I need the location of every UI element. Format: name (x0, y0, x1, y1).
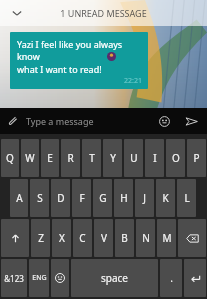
button[interactable]: M (157, 219, 176, 257)
button[interactable]: ENG (29, 259, 49, 297)
button[interactable]: P (187, 139, 206, 177)
staticText: O (172, 151, 180, 165)
staticText: D (57, 191, 65, 205)
button[interactable]: Backspace (178, 219, 206, 257)
staticText: R (67, 151, 74, 165)
button[interactable]: J (135, 179, 154, 217)
button[interactable]: L (177, 179, 196, 217)
button[interactable]: W (21, 139, 39, 177)
staticText: . (170, 271, 173, 285)
button[interactable]: U (124, 139, 143, 177)
staticText: C (79, 231, 86, 245)
staticText: J (143, 191, 146, 205)
staticText: T (89, 151, 95, 165)
button[interactable]: D (51, 179, 70, 217)
button[interactable]: T (82, 139, 101, 177)
button[interactable]: K (156, 179, 175, 217)
button[interactable]: Z (31, 219, 50, 257)
button[interactable]: Emoji (151, 108, 177, 134)
button[interactable]: Yazi I feel like you always know what I … (10, 32, 148, 89)
staticText: W (25, 151, 35, 165)
button[interactable]: Y (103, 139, 122, 177)
staticText: S (37, 191, 43, 205)
staticText: L (184, 191, 190, 205)
button[interactable]: Enter (184, 259, 206, 297)
button[interactable]: G (93, 179, 112, 217)
button[interactable]: Shift (1, 219, 29, 257)
staticText: Q (6, 151, 14, 165)
button[interactable]: Collapse (0, 0, 34, 26)
button[interactable]: Emoji keyboard (51, 259, 69, 297)
button[interactable]: V (94, 219, 113, 257)
staticText: 1 UNREAD MESSAGE (34, 7, 173, 19)
staticText: Type a message (26, 115, 151, 127)
button[interactable]: S (30, 179, 49, 217)
staticText: 22:21 (124, 76, 142, 86)
staticText: I (153, 151, 157, 165)
staticText: P (193, 151, 200, 165)
staticText: V (101, 231, 107, 245)
button[interactable]: O (166, 139, 185, 177)
staticText: Yazi I feel like you always know what I … (17, 38, 142, 76)
button[interactable]: C (73, 219, 92, 257)
button[interactable]: A (10, 179, 28, 217)
staticText: K (162, 191, 169, 205)
staticText: &123 (4, 273, 24, 284)
staticText: N (142, 231, 150, 245)
button[interactable]: E (41, 139, 59, 177)
staticText: F (79, 191, 85, 205)
staticText: space (101, 271, 128, 285)
staticText: ENG (32, 273, 47, 283)
staticText: X (59, 231, 65, 245)
staticText: A (16, 191, 23, 205)
button[interactable]: N (136, 219, 155, 257)
button[interactable]: F (72, 179, 91, 217)
staticText: B (121, 231, 128, 245)
button[interactable]: H (114, 179, 133, 217)
staticText: G (99, 191, 107, 205)
staticText: Y (110, 151, 116, 165)
button[interactable]: . (160, 259, 182, 297)
button[interactable]: Q (1, 139, 19, 177)
button[interactable]: I (145, 139, 164, 177)
button[interactable]: &123 (1, 259, 27, 297)
staticText: E (47, 151, 53, 165)
button[interactable]: Attach (0, 108, 26, 134)
button[interactable]: space (71, 259, 158, 297)
staticText: Z (38, 231, 44, 245)
button[interactable]: Send (177, 108, 205, 134)
staticText: M (162, 231, 172, 245)
staticText: H (120, 191, 128, 205)
staticText: U (130, 151, 138, 165)
button[interactable]: X (52, 219, 71, 257)
button[interactable]: R (61, 139, 80, 177)
button[interactable]: B (115, 219, 134, 257)
